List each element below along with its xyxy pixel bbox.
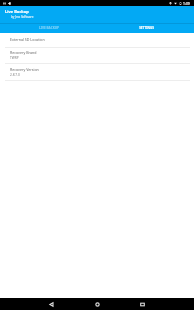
button[interactable]: Recovery Brand bbox=[0, 48, 194, 63]
staticText: 2.8.7.0 bbox=[10, 73, 20, 77]
button[interactable]: Recents bbox=[134, 298, 150, 310]
staticText: Recovery Brand bbox=[10, 50, 37, 55]
staticText: Recovery Version bbox=[10, 67, 39, 72]
button[interactable]: External SD Location bbox=[0, 33, 194, 47]
staticText: TWRP bbox=[10, 56, 19, 60]
staticText: SETTINGS bbox=[139, 26, 154, 30]
staticText: by Jmz Software bbox=[11, 15, 34, 19]
button[interactable]: SETTINGS bbox=[97, 24, 194, 33]
button[interactable]: Home bbox=[89, 298, 105, 310]
staticText: External SD Location bbox=[10, 37, 45, 42]
staticText: LIVE BACKUP bbox=[39, 26, 59, 30]
button[interactable]: Back bbox=[43, 298, 59, 310]
button[interactable]: LIVE BACKUP bbox=[0, 24, 97, 33]
staticText: 1:39 bbox=[183, 1, 190, 5]
button[interactable]: Recovery Version bbox=[0, 64, 194, 80]
staticText: Live Backup bbox=[5, 9, 29, 14]
